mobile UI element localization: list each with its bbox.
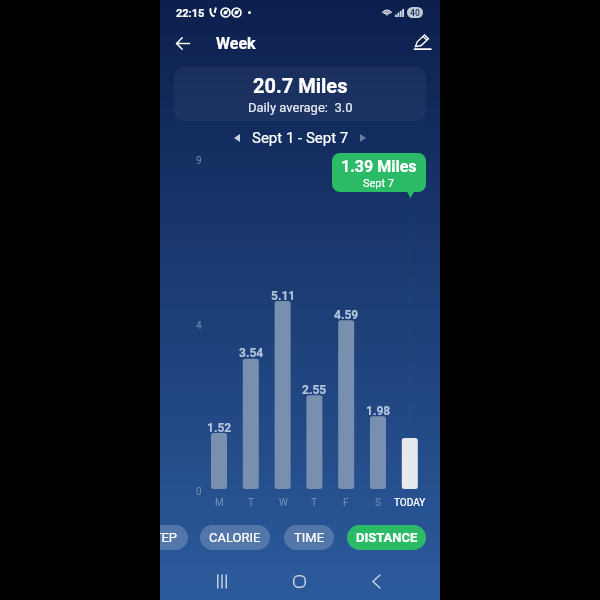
button[interactable]: Home — [280, 563, 318, 600]
staticText: F — [343, 497, 349, 509]
staticText: 0 — [196, 486, 202, 498]
button[interactable]: CALORIE — [200, 525, 270, 550]
staticText: 22:15 — [176, 7, 205, 20]
staticText: TODAY — [394, 497, 426, 509]
button[interactable]: Edit — [407, 27, 437, 57]
button[interactable]: DISTANCE — [347, 525, 426, 550]
button[interactable]: Back — [168, 28, 198, 58]
button[interactable]: Next week — [351, 127, 375, 149]
staticText: S — [375, 497, 381, 509]
staticText: 1.52 — [207, 421, 232, 435]
button[interactable]: STEP — [160, 525, 188, 550]
button[interactable]: 1.39 Miles — [332, 153, 426, 192]
staticText: 4 — [196, 320, 202, 332]
staticText: 2.55 — [302, 383, 327, 397]
staticText: 40 — [410, 8, 420, 18]
staticText: W — [279, 497, 288, 509]
staticText: 5.11 — [271, 289, 296, 303]
button[interactable]: Back — [357, 563, 395, 600]
button[interactable]: TIME — [284, 525, 334, 550]
staticText: DISTANCE — [356, 530, 418, 545]
button[interactable]: 20.7 Miles — [174, 67, 426, 121]
staticText: M — [215, 497, 224, 509]
staticText: 1.39 Miles — [341, 157, 417, 176]
staticText: 3.54 — [239, 346, 264, 360]
staticText: Week — [216, 34, 256, 53]
staticText: 9 — [196, 155, 202, 167]
button[interactable]: Recent apps — [203, 563, 241, 600]
staticText: Sept 7 — [363, 177, 395, 190]
staticText: 4.59 — [334, 308, 359, 322]
staticText: Sept 1 - Sept 7 — [252, 129, 349, 147]
staticText: TIME — [294, 530, 325, 545]
staticText: STEP — [160, 530, 178, 545]
staticText: 1.98 — [366, 404, 391, 418]
staticText: T — [311, 497, 317, 509]
staticText: Daily average: 3.0 — [248, 100, 353, 115]
staticText: T — [248, 497, 254, 509]
staticText: 20.7 Miles — [253, 74, 348, 97]
staticText: CALORIE — [209, 530, 261, 545]
button[interactable]: Previous week — [225, 127, 249, 149]
